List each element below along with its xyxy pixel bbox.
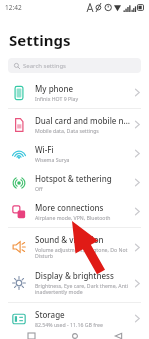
staticText: Settings: [9, 30, 71, 50]
button[interactable]: Dual card and mobile network: [0, 110, 149, 139]
staticText: Infinix HOT 9 Play: [35, 95, 79, 102]
staticText: Volume adjustment, Ringtone, Do Not Dist…: [35, 246, 130, 260]
staticText: Display & brightness: [35, 270, 114, 281]
staticText: Dual card and mobile network: [35, 115, 130, 126]
staticText: Mobile data, Data settings: [35, 127, 99, 134]
button[interactable]: Search settings: [8, 58, 141, 73]
staticText: Off: [35, 185, 43, 192]
button[interactable]: Hotspot & tethering: [0, 168, 149, 197]
staticText: Sound & vibration: [35, 234, 104, 245]
staticText: Storage: [35, 309, 65, 320]
button[interactable]: Sound & vibration: [0, 229, 149, 265]
button[interactable]: Home: [62, 333, 88, 339]
staticText: Wisema Surya: [35, 156, 70, 163]
button[interactable]: Storage: [0, 304, 149, 333]
button[interactable]: More connections: [0, 197, 149, 226]
staticText: My phone: [35, 83, 74, 94]
staticText: More connections: [35, 202, 104, 213]
button[interactable]: Back: [105, 333, 131, 339]
staticText: 82.54% used - 11.16 GB free: [35, 321, 103, 328]
button[interactable]: Recent apps: [18, 333, 44, 339]
staticText: 12:42: [5, 3, 22, 12]
button[interactable]: Wi-Fi: [0, 139, 149, 168]
staticText: Search settings: [23, 62, 66, 70]
button[interactable]: My phone: [0, 78, 149, 107]
staticText: Airplane mode, VPN, Bluetooth: [35, 214, 111, 221]
button[interactable]: Display & brightness: [0, 265, 149, 301]
staticText: Brightness, Eye care, Dark theme, Anti i…: [35, 282, 130, 296]
staticText: Hotspot & tethering: [35, 173, 112, 184]
staticText: Wi-Fi: [35, 144, 54, 155]
